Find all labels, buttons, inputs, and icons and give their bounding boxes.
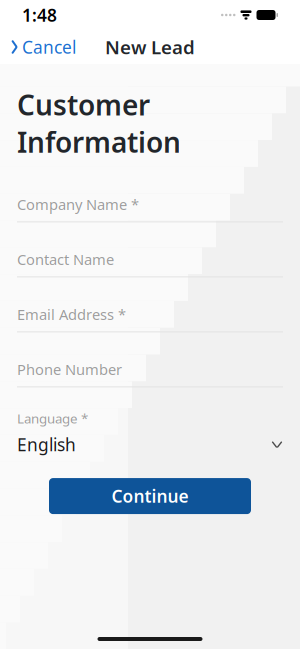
button[interactable]: Phone Number	[0, 352, 300, 407]
staticText: Language *	[17, 409, 88, 427]
button[interactable]: Company Name *	[0, 187, 300, 242]
staticText: Contact Name	[17, 250, 114, 269]
staticText: Company Name *	[17, 195, 139, 214]
button[interactable]: Contact Name	[0, 242, 300, 297]
staticText: 1:48	[22, 3, 57, 26]
staticText: Continue	[111, 485, 188, 508]
staticText: New Lead	[105, 35, 195, 59]
staticText: Customer Information	[17, 86, 181, 160]
button[interactable]: Continue	[49, 478, 251, 514]
staticText: Phone Number	[17, 360, 122, 379]
staticText: English	[17, 433, 76, 456]
staticText: Cancel	[22, 35, 76, 58]
staticText: Email Address *	[17, 305, 126, 324]
button[interactable]: Language, English	[0, 407, 300, 456]
button[interactable]: Cancel	[0, 27, 76, 66]
button[interactable]: Email Address *	[0, 297, 300, 352]
